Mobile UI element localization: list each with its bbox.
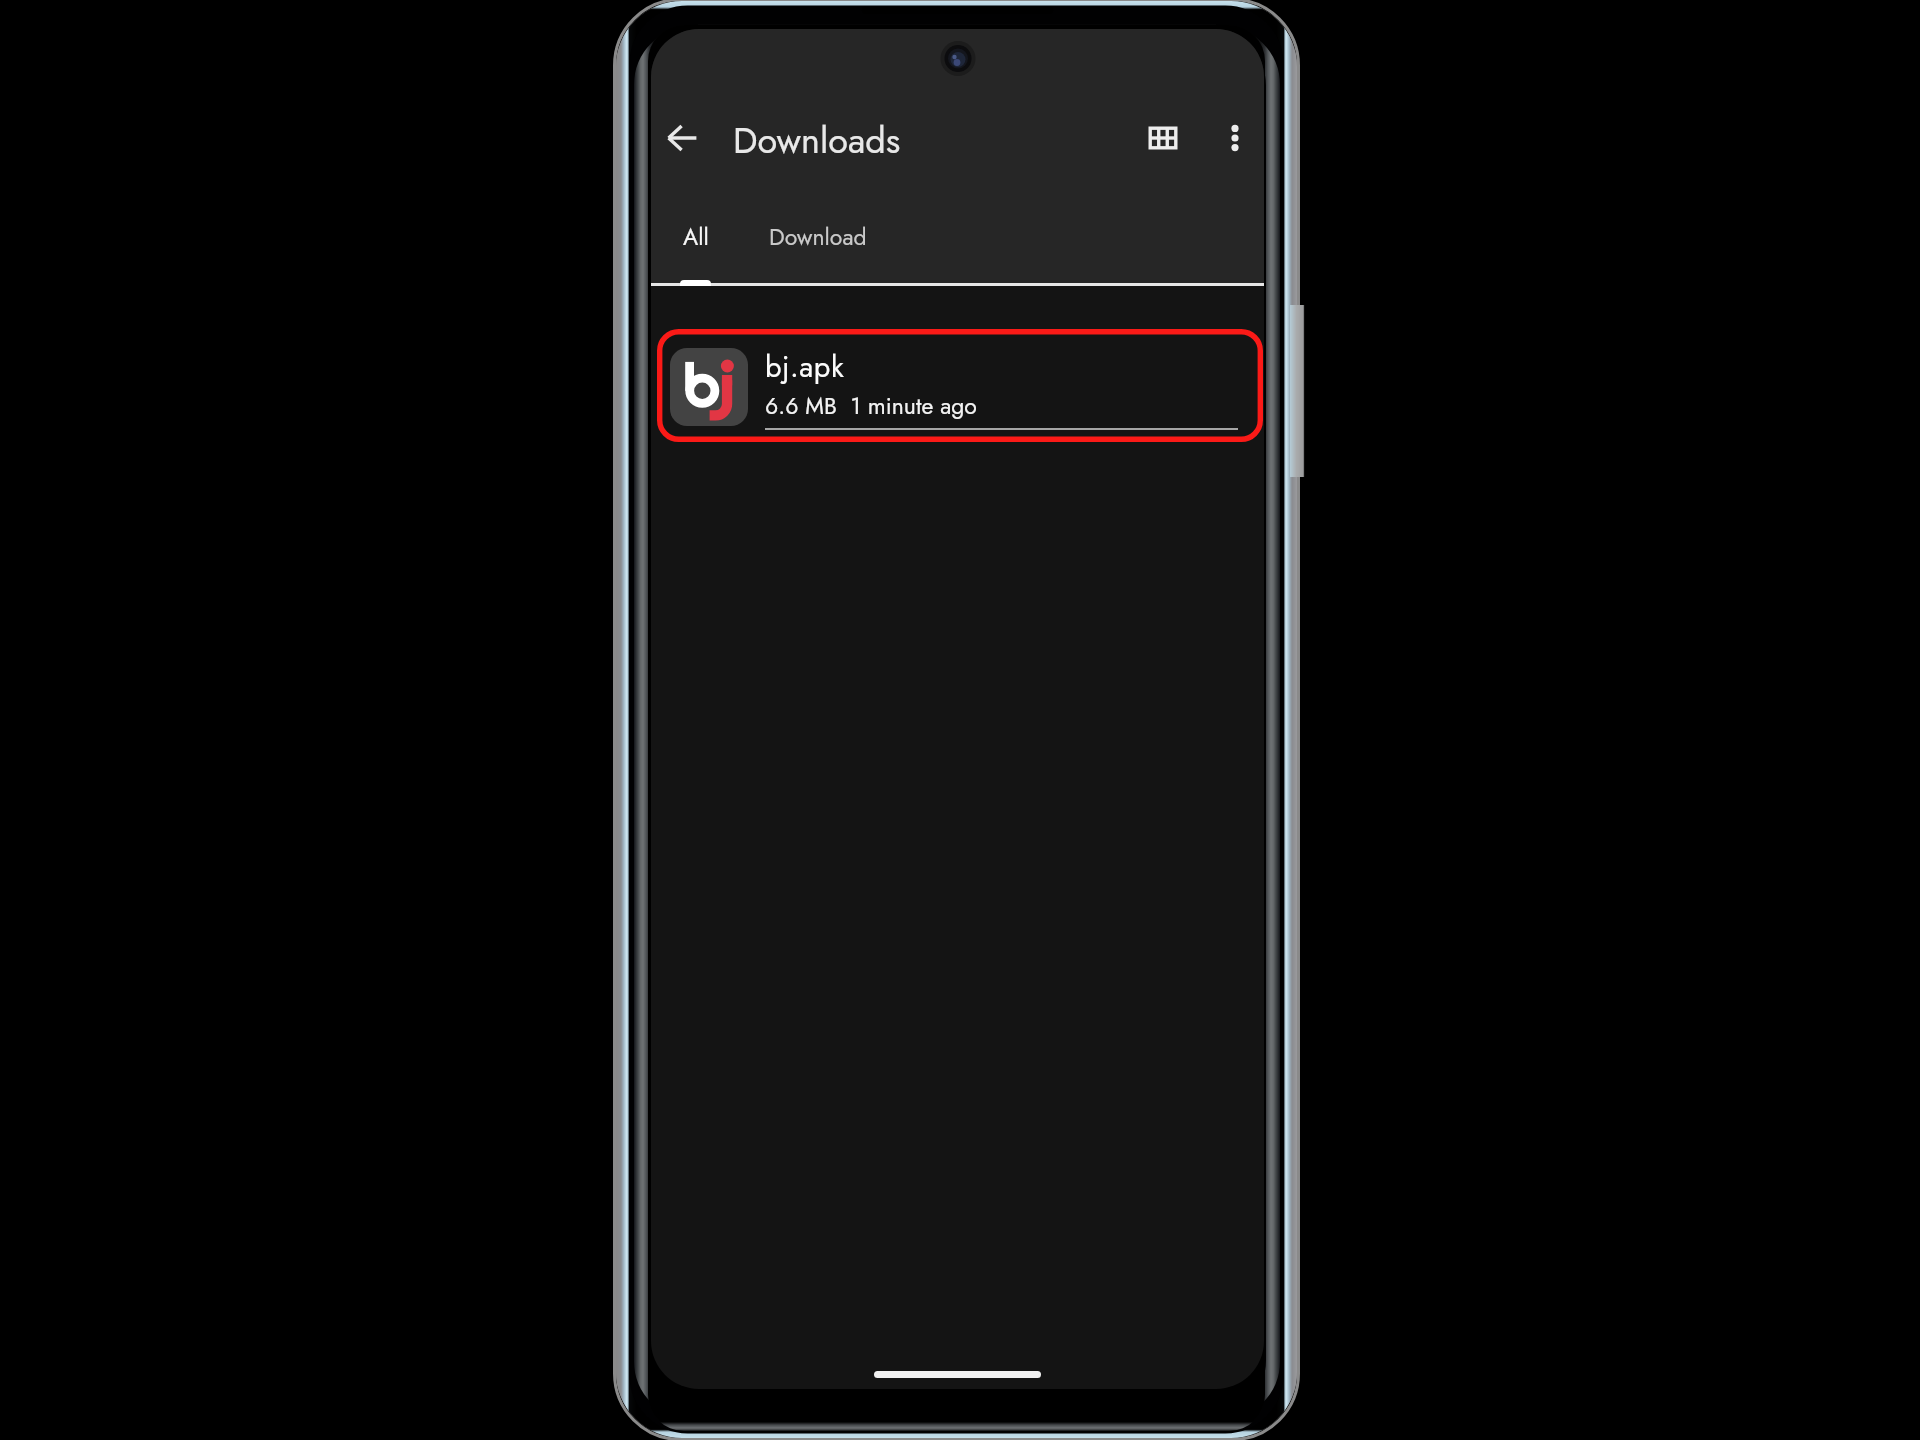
button[interactable]: Back [656, 111, 710, 165]
staticText: Download [769, 220, 867, 253]
staticText: Downloads [733, 114, 901, 166]
button[interactable]: More options [1208, 111, 1262, 165]
staticText: bj.apk [765, 346, 845, 388]
staticText: All [683, 220, 709, 253]
button[interactable]: Grid view [1136, 111, 1190, 165]
button[interactable]: bj.apk [657, 329, 1263, 442]
button[interactable]: Download [747, 206, 889, 280]
staticText: 6.6 MB 1 minute ago [765, 389, 977, 422]
button[interactable]: All [662, 206, 729, 280]
